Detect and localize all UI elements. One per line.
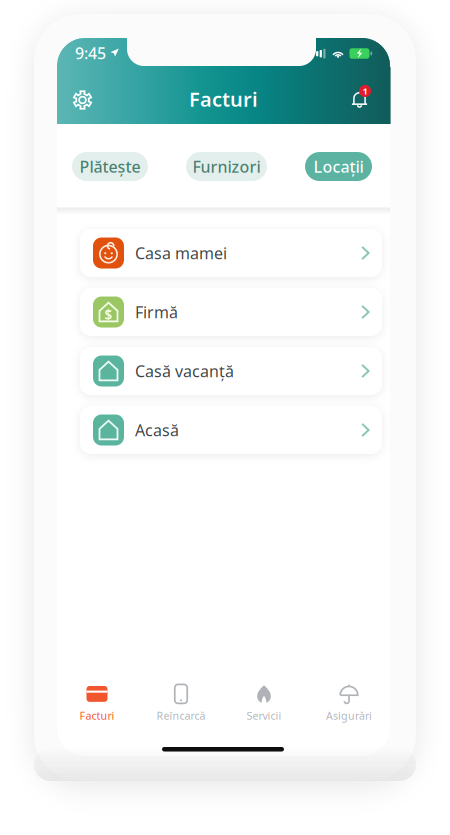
staticText: Facturi: [189, 86, 258, 112]
staticText: Servicii: [246, 708, 281, 723]
button[interactable]: Facturi: [56, 683, 138, 723]
staticText: Facturi: [79, 708, 114, 723]
staticText: Reîncarcă: [156, 708, 205, 723]
button[interactable]: Casa mamei: [80, 229, 382, 277]
staticText: Plătește: [79, 156, 140, 177]
button[interactable]: Reîncarcă: [140, 683, 222, 723]
button[interactable]: Notifications: [347, 84, 377, 114]
staticText: Firmă: [135, 301, 178, 323]
button[interactable]: Acasă: [80, 406, 382, 454]
button[interactable]: Plătește: [72, 152, 148, 181]
staticText: 1: [362, 85, 367, 97]
button[interactable]: Servicii: [223, 683, 305, 723]
staticText: Asigurări: [326, 708, 372, 723]
button[interactable]: $: [80, 288, 382, 336]
staticText: Furnizori: [192, 156, 260, 177]
button[interactable]: Casă vacanță: [80, 347, 382, 395]
button[interactable]: Locații: [305, 152, 372, 181]
staticText: 9:45: [75, 42, 106, 64]
staticText: Acasă: [135, 419, 179, 441]
button[interactable]: Asigurări: [308, 683, 390, 723]
staticText: Casă vacanță: [135, 360, 234, 382]
staticText: Locații: [313, 156, 363, 177]
button[interactable]: Settings: [73, 91, 91, 109]
staticText: $: [104, 306, 112, 323]
staticText: Casa mamei: [135, 242, 227, 264]
button[interactable]: Furnizori: [186, 152, 267, 181]
